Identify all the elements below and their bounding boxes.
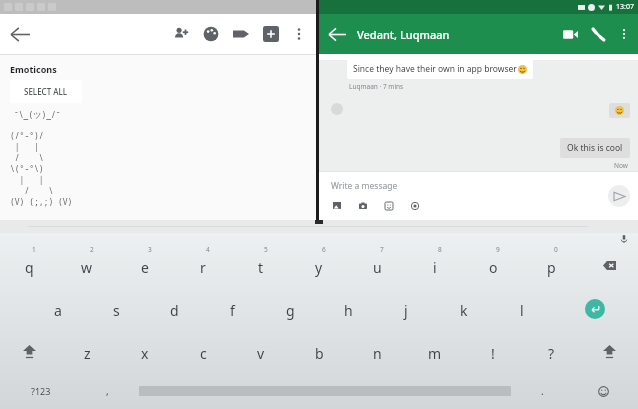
staticText: ? xyxy=(548,344,555,363)
button[interactable]: ? xyxy=(522,330,580,373)
button[interactable]: 2 xyxy=(58,244,116,287)
button[interactable]: ?123 xyxy=(0,373,81,409)
staticText: \(°-°\) xyxy=(10,163,44,174)
staticText: 7 xyxy=(380,245,384,254)
staticText: Ok this is cool xyxy=(567,142,623,154)
staticText: 13:07 xyxy=(616,2,634,12)
button[interactable]: v xyxy=(232,330,290,373)
staticText: z xyxy=(84,344,91,363)
button[interactable]: n xyxy=(348,330,406,373)
staticText: ¯\_(ツ)_/¯ xyxy=(14,109,61,120)
button[interactable]: m xyxy=(406,330,464,373)
staticText: 1 xyxy=(32,245,36,254)
button[interactable]: Enter xyxy=(551,287,638,330)
button[interactable]: Back xyxy=(0,14,40,54)
staticText: e xyxy=(141,258,149,277)
button[interactable]: More options xyxy=(286,21,312,47)
button[interactable]: Archive xyxy=(256,19,286,49)
button[interactable]: h xyxy=(319,287,377,330)
button[interactable]: 5 xyxy=(232,244,290,287)
staticText: x xyxy=(141,344,149,363)
staticText: ! xyxy=(491,344,495,363)
button[interactable]: s xyxy=(87,287,145,330)
button[interactable]: 1 xyxy=(0,244,58,287)
button[interactable]: l xyxy=(493,287,551,330)
button[interactable]: Add person xyxy=(166,19,196,49)
staticText: q xyxy=(25,258,34,277)
staticText: (/°-°)/ xyxy=(10,130,44,141)
staticText: v xyxy=(257,344,265,363)
staticText: Write a message xyxy=(331,180,398,192)
staticText: d xyxy=(170,301,179,320)
staticText: t xyxy=(258,258,264,277)
staticText: u xyxy=(373,258,382,277)
staticText: f xyxy=(230,301,235,320)
button[interactable]: Send xyxy=(608,185,630,207)
staticText: c xyxy=(200,344,207,363)
button[interactable]: . xyxy=(516,373,568,409)
staticText: p xyxy=(547,258,556,277)
staticText: SELECT ALL xyxy=(24,86,68,97)
button[interactable]: Call xyxy=(584,20,612,48)
button[interactable]: Space xyxy=(133,373,516,409)
button[interactable]: Theme xyxy=(196,19,226,49)
button[interactable]: Backspace xyxy=(580,244,638,287)
staticText: j xyxy=(404,301,408,320)
button[interactable]: More options xyxy=(612,22,636,46)
button[interactable] xyxy=(609,103,630,118)
button[interactable]: d xyxy=(145,287,203,330)
button[interactable]: Gallery xyxy=(329,198,345,214)
button[interactable]: z xyxy=(58,330,116,373)
button[interactable]: f xyxy=(203,287,261,330)
button[interactable]: Shift xyxy=(580,330,638,373)
button[interactable]: 3 xyxy=(116,244,174,287)
button[interactable]: j xyxy=(377,287,435,330)
staticText: k xyxy=(460,301,468,320)
staticText: a xyxy=(54,301,62,320)
button[interactable]: Ok this is cool xyxy=(560,138,630,158)
staticText: 6 xyxy=(322,245,326,254)
staticText: l xyxy=(520,301,524,320)
button[interactable]: 4 xyxy=(174,244,232,287)
staticText: . xyxy=(541,384,544,398)
button[interactable]: 8 xyxy=(406,244,464,287)
staticText: ?123 xyxy=(31,385,51,397)
staticText: 5 xyxy=(264,245,268,254)
button[interactable]: Camera xyxy=(355,198,371,214)
staticText: | | xyxy=(10,174,44,185)
button[interactable]: SELECT ALL xyxy=(10,80,82,103)
button[interactable]: Video call xyxy=(556,20,584,48)
staticText: Emoticons xyxy=(10,63,57,75)
button[interactable]: Back xyxy=(319,16,355,52)
button[interactable]: g xyxy=(261,287,319,330)
staticText: Vedant, Luqmaan xyxy=(357,27,450,42)
button[interactable]: Since they have their own in app browser xyxy=(347,59,533,79)
button[interactable]: 7 xyxy=(348,244,406,287)
button[interactable]: c xyxy=(174,330,232,373)
button[interactable]: ! xyxy=(464,330,522,373)
button[interactable]: Stickers xyxy=(381,198,397,214)
button[interactable]: Location xyxy=(407,198,423,214)
button[interactable]: 0 xyxy=(522,244,580,287)
staticText: y xyxy=(315,258,323,277)
button[interactable]: 9 xyxy=(464,244,522,287)
button[interactable]: a xyxy=(29,287,87,330)
button[interactable]: 6 xyxy=(290,244,348,287)
staticText: m xyxy=(428,344,442,363)
staticText: g xyxy=(286,301,295,320)
staticText: / \ xyxy=(10,185,54,196)
staticText: Luqmaan · 7 mins xyxy=(349,82,404,91)
button[interactable]: k xyxy=(435,287,493,330)
button[interactable]: Label xyxy=(226,19,256,49)
staticText: o xyxy=(489,258,498,277)
button[interactable]: x xyxy=(116,330,174,373)
staticText: , xyxy=(106,384,109,398)
staticText: 3 xyxy=(148,245,152,254)
staticText: (V) (;,;) (V) xyxy=(10,196,73,207)
button[interactable]: , xyxy=(81,373,133,409)
staticText: Since they have their own in app browser xyxy=(353,63,517,75)
staticText: r xyxy=(200,258,206,277)
button[interactable]: Shift xyxy=(0,330,58,373)
button[interactable]: b xyxy=(290,330,348,373)
button[interactable]: Emoji xyxy=(568,373,638,409)
